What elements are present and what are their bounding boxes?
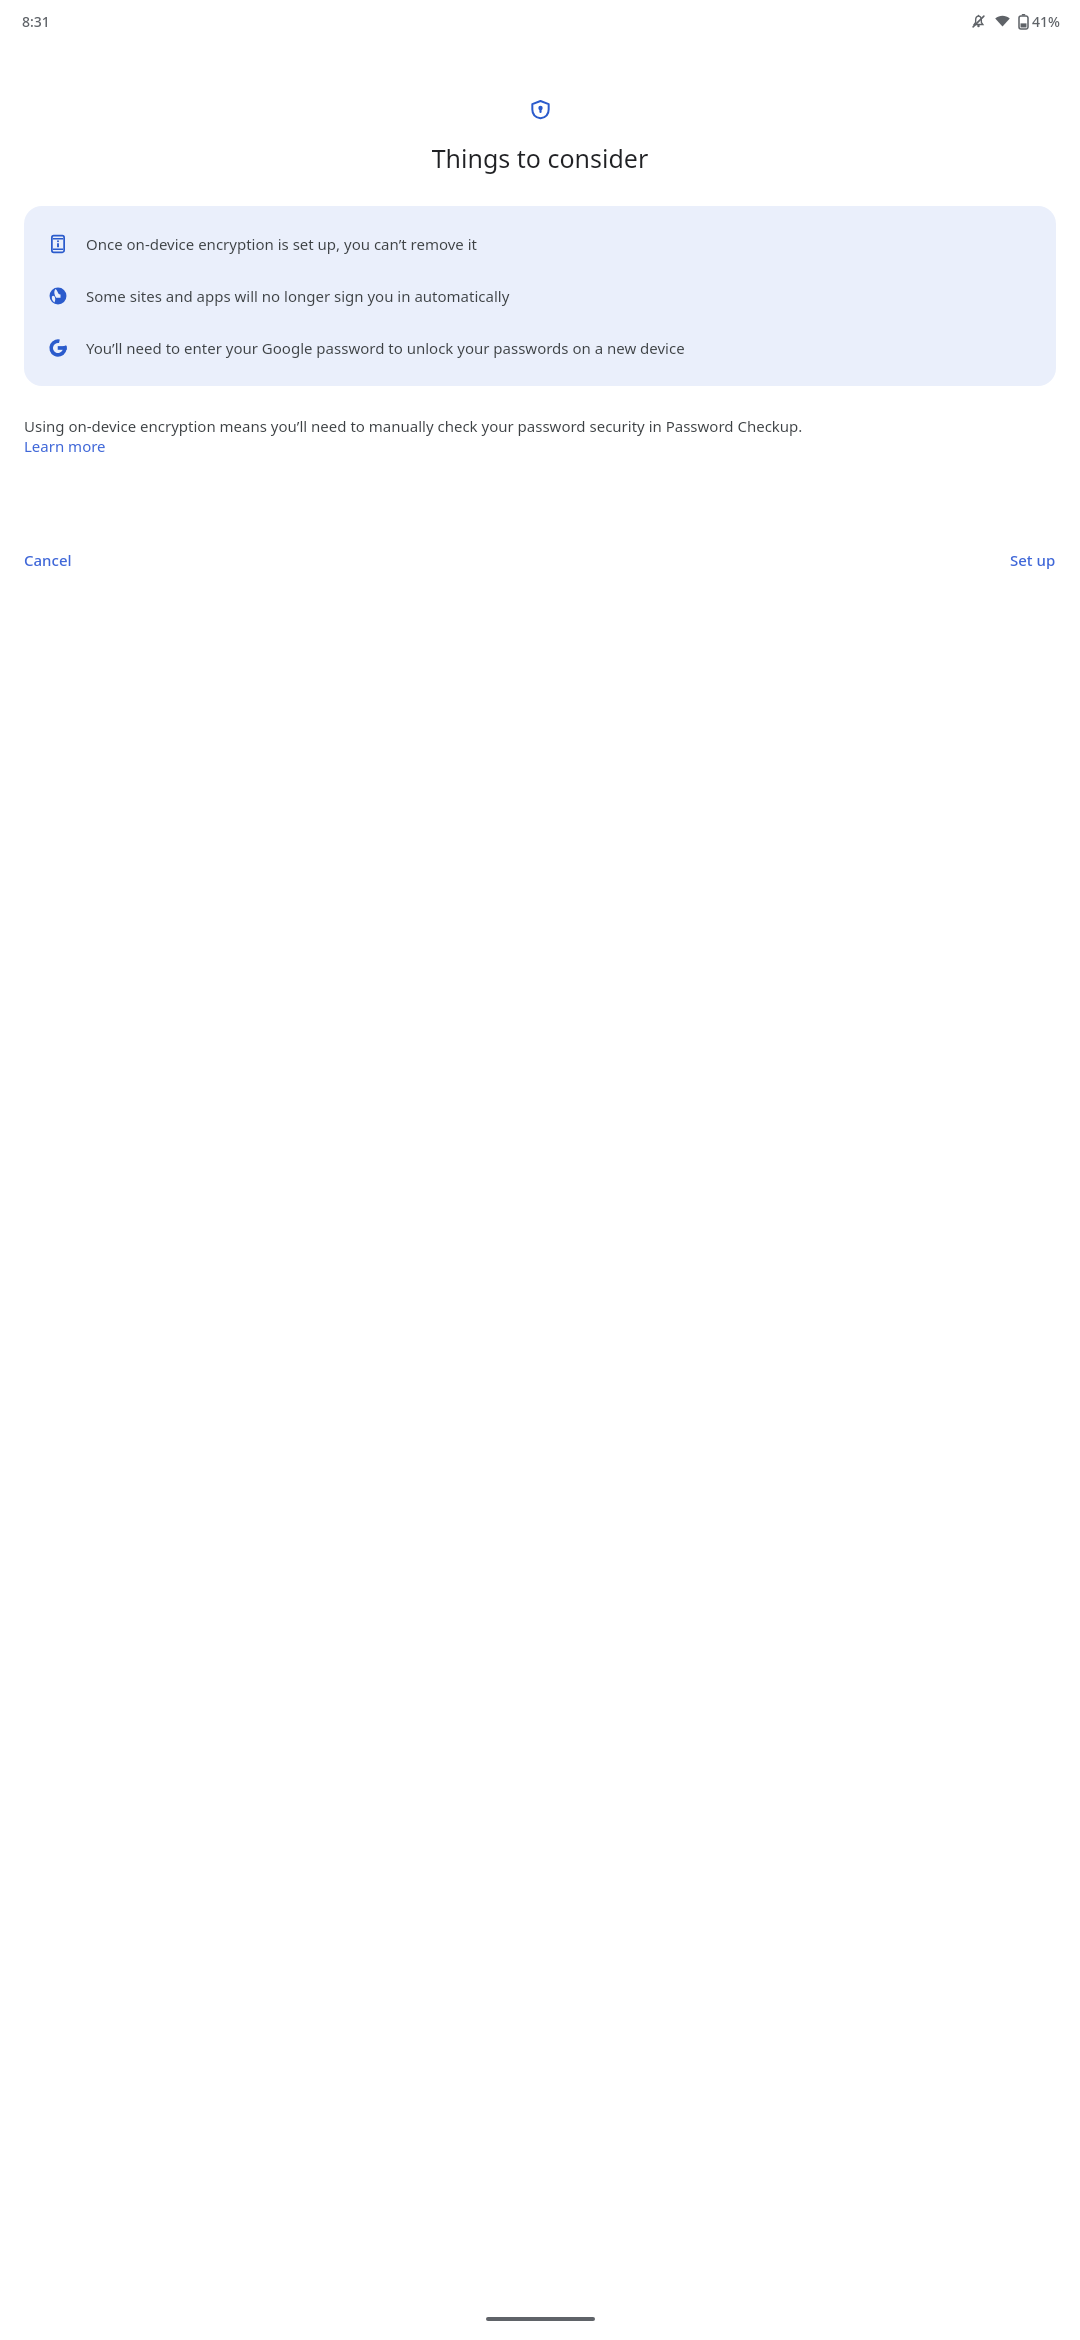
staticText: Things to consider (0, 141, 1080, 175)
button[interactable]: Cancel (12, 540, 84, 580)
staticText: Using on-device encryption means you’ll … (24, 416, 1056, 436)
staticText: 41% (1032, 12, 1060, 31)
staticText: Set up (1010, 550, 1056, 570)
staticText: Once on-device encryption is set up, you… (86, 234, 1034, 254)
staticText: 8:31 (22, 12, 50, 31)
button[interactable]: Set up (998, 540, 1068, 580)
staticText: You’ll need to enter your Google passwor… (86, 338, 1034, 358)
staticText: Some sites and apps will no longer sign … (86, 286, 1034, 306)
button[interactable]: Learn more (24, 436, 106, 456)
staticText: Cancel (24, 550, 72, 570)
staticText: Learn more (24, 436, 106, 456)
